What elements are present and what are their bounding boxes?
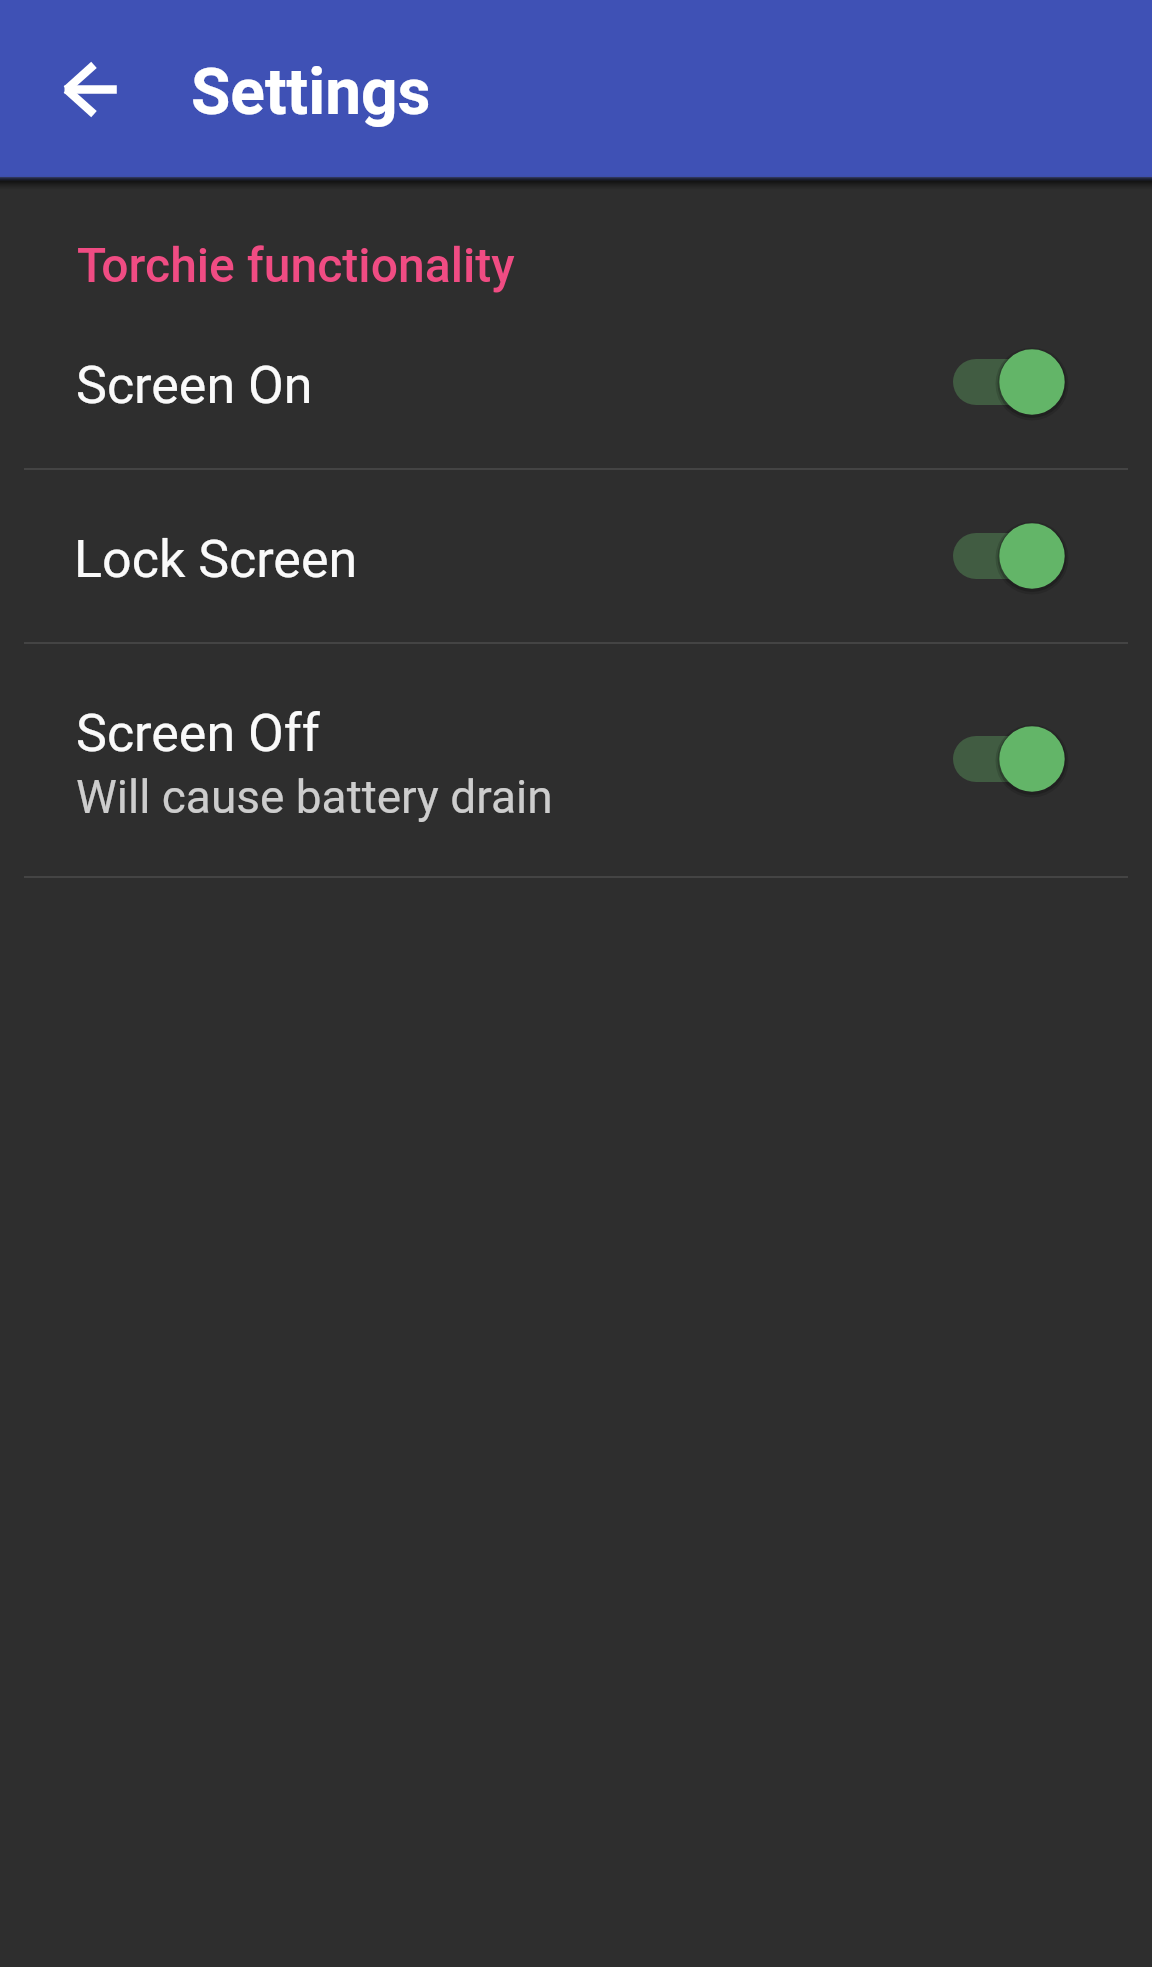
- staticText: Settings: [191, 55, 431, 130]
- button[interactable]: Lock Screen: [0, 469, 1152, 643]
- staticText: Lock Screen: [74, 529, 358, 590]
- staticText: Screen Off: [76, 703, 320, 764]
- button[interactable]: Screen Off, on: [941, 719, 1075, 799]
- staticText: Will cause battery drain: [76, 770, 553, 824]
- staticText: Screen On: [76, 355, 313, 416]
- button[interactable]: Navigate up: [42, 41, 138, 137]
- button[interactable]: Screen Off: [0, 643, 1152, 877]
- staticText: Torchie functionality: [77, 237, 515, 293]
- button[interactable]: Lock Screen, on: [941, 516, 1075, 596]
- button[interactable]: Screen On, on: [941, 342, 1075, 422]
- button[interactable]: Screen On: [0, 290, 1152, 469]
